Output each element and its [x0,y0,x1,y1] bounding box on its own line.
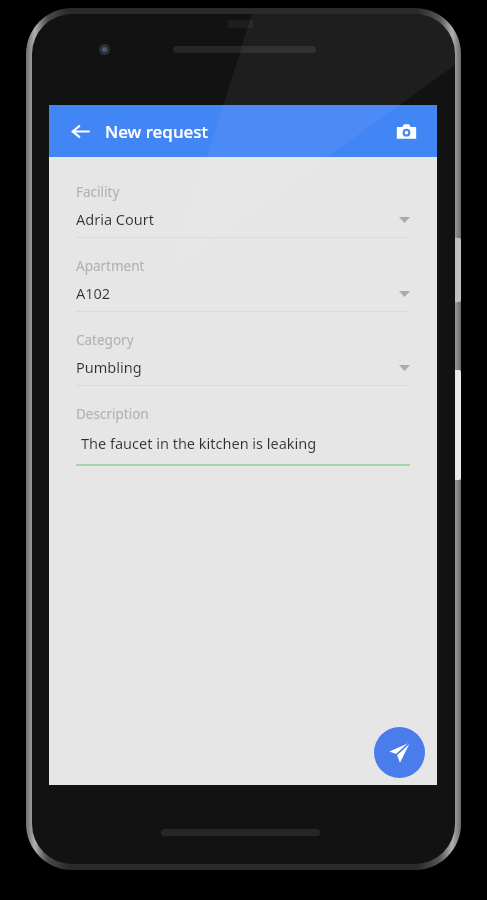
button[interactable]: Facility [76,183,410,257]
staticText: Adria Court [76,209,399,229]
button[interactable]: Take photo [389,114,423,148]
staticText: Pumbling [76,357,399,377]
button[interactable]: Back [63,114,97,148]
staticText: Apartment [76,257,145,275]
button[interactable]: Send request [374,727,425,778]
staticText: A102 [76,283,399,303]
staticText: Description [76,405,149,423]
button[interactable]: Category [76,331,410,405]
button[interactable]: Apartment [76,257,410,331]
staticText: Category [76,331,134,349]
staticText: Facility [76,183,120,201]
button[interactable]: Description [76,405,410,466]
staticText: The faucet in the kitchen is leaking [81,433,317,453]
staticText: New request [105,120,209,143]
